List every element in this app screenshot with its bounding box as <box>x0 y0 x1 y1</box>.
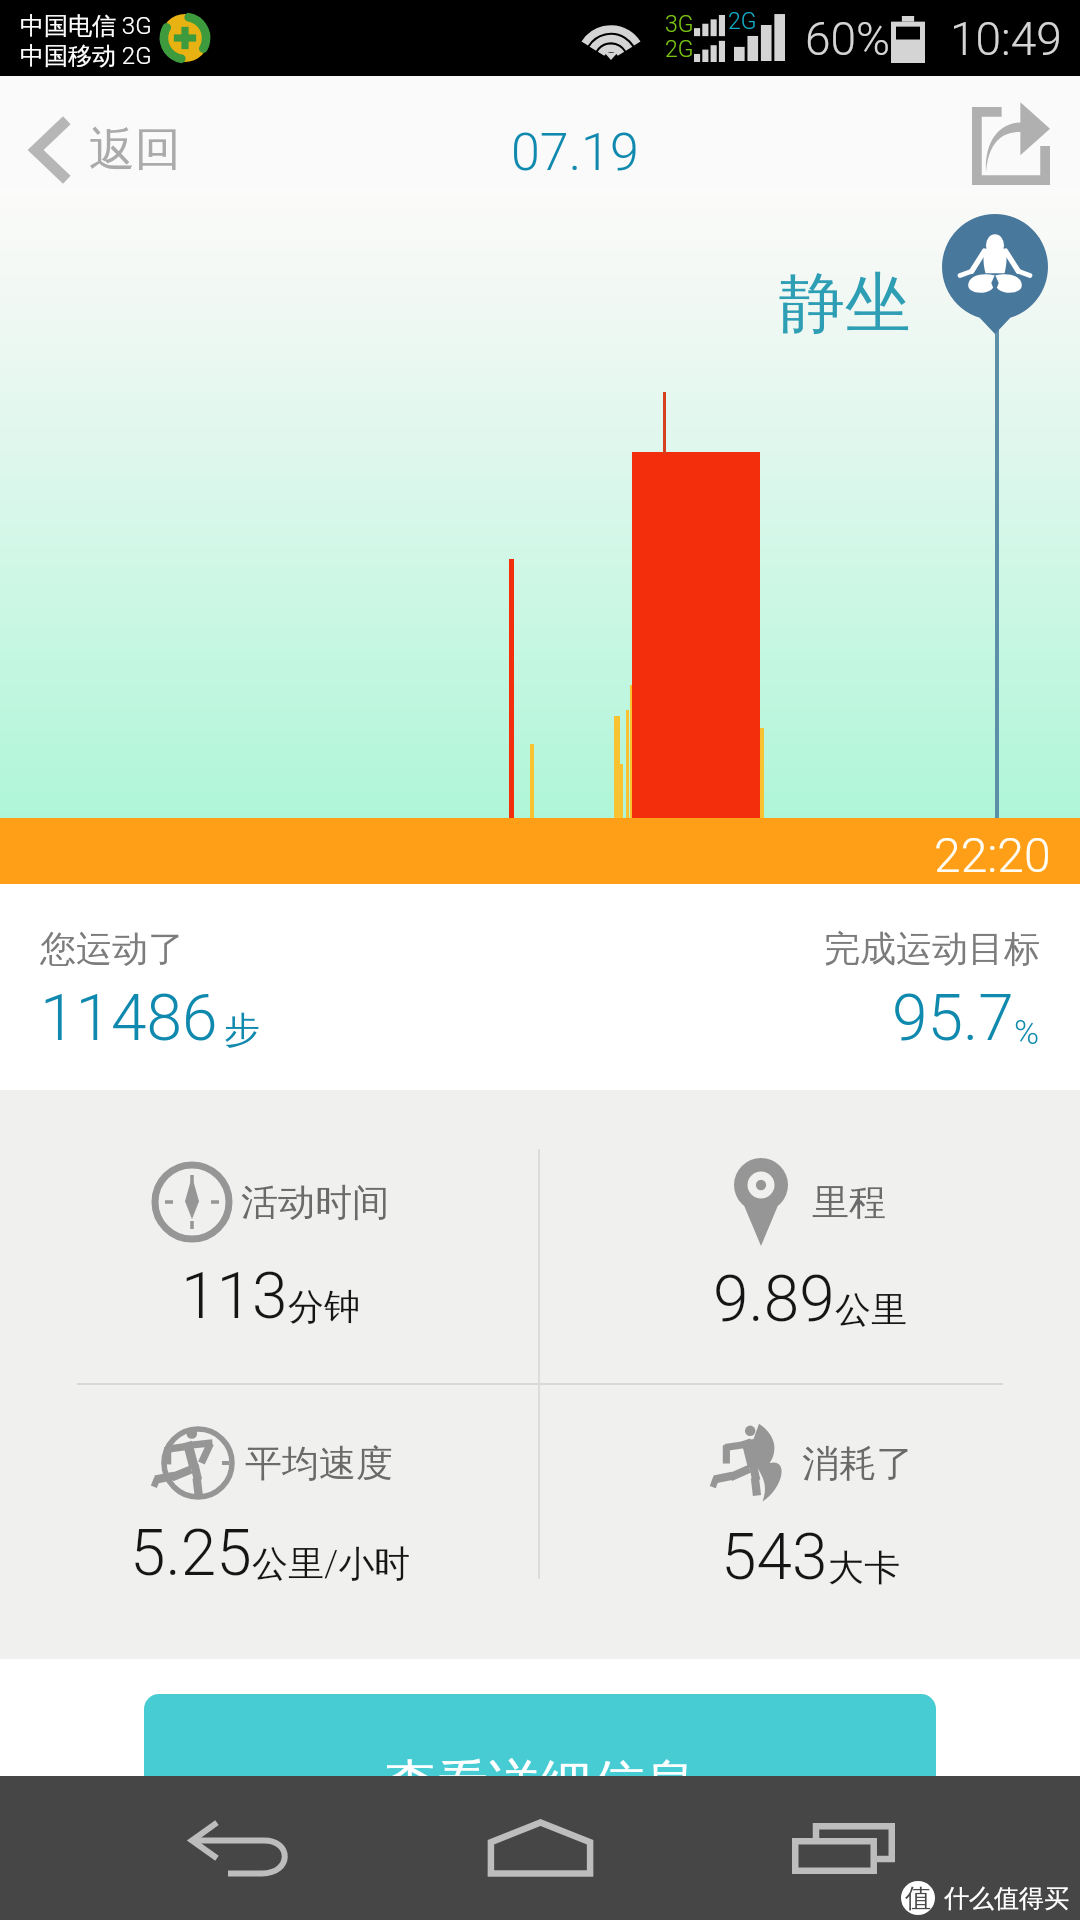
button[interactable]: 里程 <box>540 1090 1080 1384</box>
staticText: 公里 <box>835 1287 907 1332</box>
staticText: 返回 <box>89 121 181 179</box>
staticText: % <box>1014 1012 1040 1052</box>
button[interactable]: 活动时间 <box>0 1090 540 1384</box>
button[interactable]: 返回 <box>0 101 205 199</box>
button[interactable]: Home <box>360 1776 720 1920</box>
staticText: 什么值得买 <box>944 1883 1069 1914</box>
staticText: 22:20 <box>934 827 1051 883</box>
staticText: 中国电信 3G <box>20 11 152 41</box>
staticText: 9.89 <box>713 1262 835 1337</box>
button[interactable]: 消耗了 <box>540 1384 1080 1659</box>
staticText: 步 <box>224 1007 260 1052</box>
staticText: 公里/小时 <box>252 1541 411 1586</box>
staticText: 完成运动目标 <box>824 926 1040 971</box>
button[interactable]: Recent apps <box>720 1776 1080 1920</box>
staticText: 平均速度 <box>245 1440 393 1487</box>
staticText: 543 <box>721 1520 828 1595</box>
staticText: 您运动了 <box>40 926 184 971</box>
staticText: 消耗了 <box>802 1440 913 1487</box>
staticText: 3G <box>665 11 694 38</box>
staticText: 113 <box>181 1259 288 1334</box>
staticText: 里程 <box>812 1179 886 1226</box>
staticText: 2G <box>728 8 757 35</box>
button[interactable]: 平均速度 <box>0 1384 540 1659</box>
staticText: 2G <box>665 36 694 63</box>
staticText: 07.19 <box>511 122 639 183</box>
button[interactable]: Share <box>949 93 1080 199</box>
staticText: 11486 <box>40 981 218 1056</box>
staticText: 活动时间 <box>241 1179 389 1226</box>
staticText: 5.25 <box>130 1516 252 1591</box>
staticText: 95.7 <box>892 981 1014 1056</box>
staticText: 查看详细信息 <box>384 1752 696 1818</box>
staticText: 静坐 <box>779 262 911 345</box>
staticText: 大卡 <box>828 1545 900 1590</box>
staticText: 60% <box>805 12 891 66</box>
staticText: 中国移动 2G <box>20 41 152 71</box>
staticText: 分钟 <box>288 1284 360 1329</box>
button[interactable]: 查看详细信息 <box>144 1694 936 1854</box>
button[interactable]: Back <box>0 1776 360 1920</box>
staticText: 10:49 <box>950 12 1062 66</box>
staticText: 值 <box>905 1882 931 1915</box>
